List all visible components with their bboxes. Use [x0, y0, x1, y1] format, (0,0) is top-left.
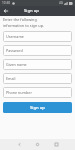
button[interactable]: Recents [50, 139, 62, 150]
button[interactable]: Username [3, 31, 72, 42]
button[interactable]: Home [31, 139, 43, 150]
staticText: Username [6, 34, 24, 39]
staticText: Phone number [6, 90, 32, 95]
staticText: 10:30 [2, 1, 11, 5]
button[interactable]: Back [13, 139, 25, 150]
staticText: Password [6, 48, 23, 53]
button[interactable]: Email [3, 73, 72, 84]
button[interactable]: Back [0, 6, 12, 16]
button[interactable]: Sign up [3, 102, 72, 113]
button[interactable]: Password [3, 45, 72, 56]
staticText: Email [6, 76, 16, 81]
staticText: Sign up [24, 8, 39, 14]
button[interactable]: Given name [3, 59, 72, 70]
button[interactable]: Phone number [3, 87, 72, 98]
staticText: Given name [6, 62, 27, 67]
staticText: 4G [59, 1, 63, 5]
staticText: Sign up [30, 105, 45, 111]
staticText: Enter the following information to sign … [3, 17, 44, 28]
